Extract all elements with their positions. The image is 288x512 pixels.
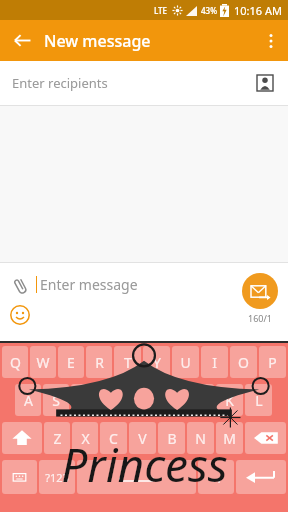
staticText: Enter recipients [12, 74, 108, 92]
button[interactable]: D [71, 384, 98, 416]
button[interactable]: T [114, 346, 141, 378]
button[interactable]: K [216, 384, 243, 416]
button[interactable]: U [172, 346, 199, 378]
staticText: A [24, 391, 33, 410]
staticText: Princess [61, 433, 228, 496]
button[interactable]: Space [77, 460, 196, 494]
staticText: C [109, 429, 118, 448]
button[interactable]: F [100, 384, 127, 416]
staticText: N [195, 429, 206, 448]
button[interactable]: C [100, 422, 127, 454]
staticText: L [255, 391, 263, 410]
staticText: W [36, 353, 50, 372]
button[interactable]: R [86, 346, 112, 378]
button[interactable]: O [230, 346, 257, 378]
staticText: Z [53, 429, 62, 448]
button[interactable]: H [158, 384, 185, 416]
button[interactable]: G [129, 384, 156, 416]
button[interactable]: Q [2, 346, 28, 378]
button[interactable]: Back [0, 20, 44, 61]
staticText: X [81, 429, 90, 448]
button[interactable]: Shift [2, 422, 42, 454]
staticText: LTE [154, 5, 168, 16]
button[interactable]: Y [143, 346, 170, 378]
button[interactable]: W [30, 346, 56, 378]
staticText: V [138, 429, 147, 448]
button[interactable]: E [58, 346, 84, 378]
staticText: U [180, 353, 191, 372]
staticText: Q [10, 353, 21, 372]
button[interactable]: N [187, 422, 214, 454]
button[interactable]: Enter [236, 460, 286, 494]
staticText: T [124, 353, 132, 372]
button[interactable]: V [129, 422, 156, 454]
button[interactable]: I [201, 346, 228, 378]
button[interactable]: More options [254, 20, 288, 61]
staticText: 10:16 AM [234, 3, 282, 18]
staticText: S [52, 391, 60, 410]
staticText: I [212, 353, 217, 372]
button[interactable]: Backspace [245, 422, 286, 454]
button[interactable]: J [187, 384, 214, 416]
staticText: Y [153, 353, 161, 372]
staticText: 160/1 [248, 312, 272, 324]
button[interactable]: Send [242, 273, 278, 309]
staticText: P [268, 353, 277, 372]
button[interactable]: . , [198, 460, 234, 494]
button[interactable]: ?123 [39, 460, 75, 494]
button[interactable]: X [72, 422, 98, 454]
button[interactable]: Z [44, 422, 70, 454]
button[interactable]: Add contact [254, 72, 276, 94]
button[interactable]: Switch keyboard [2, 460, 37, 494]
staticText: ?123 [45, 470, 69, 485]
button[interactable]: Enter recipients [0, 61, 288, 105]
staticText: K [225, 391, 234, 410]
staticText: E [67, 353, 75, 372]
staticText: . , [212, 470, 221, 485]
staticText: R [95, 353, 104, 372]
button[interactable]: B [158, 422, 185, 454]
staticText: H [166, 391, 177, 410]
staticText: B [167, 429, 177, 448]
button[interactable]: M [216, 422, 243, 454]
button[interactable]: Attach [6, 271, 34, 299]
staticText: Enter message [40, 275, 138, 294]
staticText: F [110, 391, 118, 410]
staticText: G [137, 391, 148, 410]
button[interactable]: A [15, 384, 41, 416]
button[interactable]: Emoji [8, 303, 32, 327]
staticText: J [199, 391, 203, 410]
staticText: New message [44, 30, 151, 52]
staticText: M [223, 429, 236, 448]
staticText: D [79, 391, 90, 410]
staticText: 43% [201, 5, 217, 16]
button[interactable]: L [245, 384, 272, 416]
button[interactable]: S [43, 384, 69, 416]
button[interactable]: P [259, 346, 286, 378]
button[interactable]: Enter message [36, 275, 138, 294]
staticText: O [238, 353, 249, 372]
